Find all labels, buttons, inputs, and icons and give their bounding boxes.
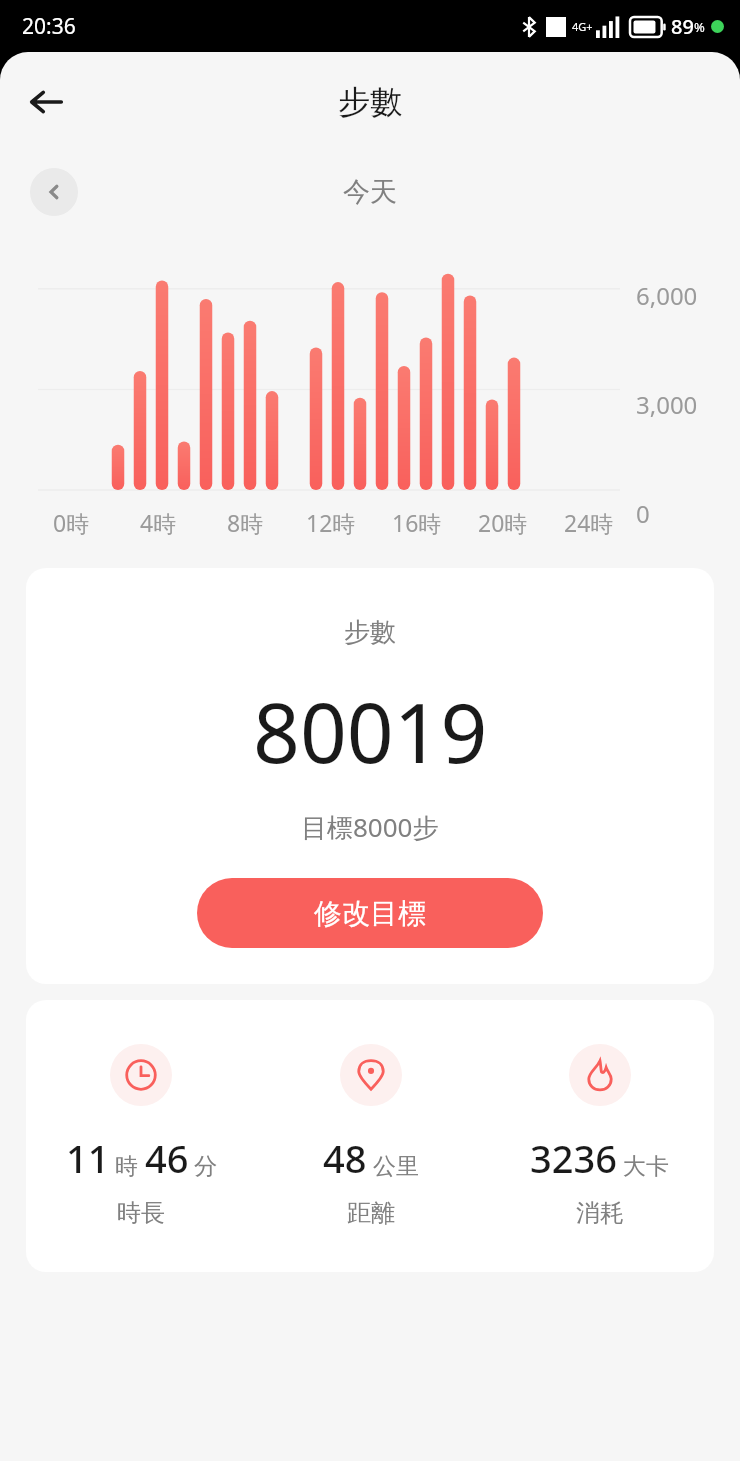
staticText: 8時 [227, 507, 264, 538]
staticText: % [694, 18, 705, 36]
staticText: 時 [115, 1152, 138, 1181]
button[interactable]: 3236 [485, 1044, 714, 1228]
staticText: 80019 [253, 675, 488, 787]
staticText: 時長 [117, 1198, 165, 1228]
staticText: 今天 [343, 175, 397, 209]
staticText: 分 [194, 1152, 217, 1181]
staticText: 6,000 [636, 279, 698, 312]
button[interactable]: Back [20, 76, 72, 128]
staticText: 4G+ [572, 19, 593, 34]
staticText: 修改目標 [314, 896, 426, 931]
staticText: 20:36 [22, 12, 76, 41]
staticText: 目標8000步 [301, 809, 439, 845]
staticText: 0時 [53, 507, 90, 538]
staticText: 20時 [478, 507, 528, 538]
staticText: 16時 [392, 507, 442, 538]
staticText: 距離 [347, 1198, 395, 1228]
staticText: 步數 [344, 616, 396, 649]
staticText: 4時 [140, 507, 177, 538]
staticText: 48 [323, 1132, 367, 1184]
button[interactable]: Previous day [30, 168, 78, 216]
staticText: 11 [66, 1132, 110, 1184]
staticText: 89 [671, 13, 694, 40]
button[interactable]: 修改目標 [197, 878, 543, 948]
staticText: 消耗 [576, 1198, 624, 1228]
staticText: 3236 [530, 1132, 617, 1184]
staticText: 大卡 [623, 1152, 669, 1181]
staticText: 46 [145, 1132, 189, 1184]
staticText: 0 [636, 497, 650, 530]
staticText: 3,000 [636, 388, 698, 421]
button[interactable]: 11 [26, 1044, 256, 1228]
staticText: 步數 [338, 82, 402, 122]
button[interactable]: 48 [256, 1044, 485, 1228]
staticText: 24時 [564, 507, 614, 538]
staticText: 12時 [306, 507, 356, 538]
staticText: 公里 [373, 1152, 419, 1181]
